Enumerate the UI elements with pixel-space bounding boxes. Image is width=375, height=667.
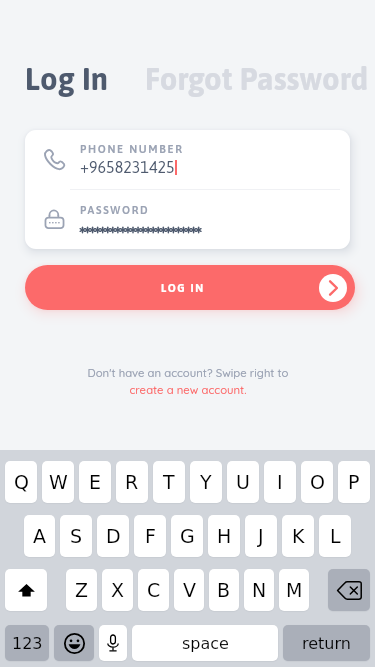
button[interactable]: 123 (5, 625, 49, 661)
staticText: I (277, 471, 283, 493)
button[interactable]: S (60, 515, 92, 557)
staticText: E (89, 471, 102, 493)
button[interactable]: space (132, 625, 278, 661)
button[interactable]: J (245, 515, 277, 557)
button[interactable]: V (174, 569, 204, 611)
staticText: LOG IN (161, 282, 205, 295)
button[interactable]: P (338, 461, 370, 503)
staticText: space (182, 634, 229, 653)
staticText: 123 (12, 634, 43, 653)
staticText: B (217, 579, 231, 601)
button[interactable]: Z (66, 569, 97, 611)
staticText: D (106, 525, 121, 547)
staticText: J (258, 525, 264, 547)
staticText: V (183, 579, 196, 601)
button[interactable]: Emoji (54, 625, 94, 661)
button[interactable]: K (282, 515, 314, 557)
button[interactable]: M (279, 569, 309, 611)
button[interactable]: N (244, 569, 274, 611)
button[interactable]: L (319, 515, 351, 557)
button[interactable]: LOG IN (25, 265, 355, 310)
staticText: K (292, 525, 305, 547)
staticText: L (330, 525, 341, 547)
button[interactable]: Backspace (328, 569, 370, 611)
button[interactable]: H (208, 515, 240, 557)
staticText: +9658231425 (80, 158, 175, 176)
button[interactable]: Log In (25, 61, 109, 97)
staticText: Don't have an account? Swipe right to (87, 366, 289, 380)
button[interactable]: X (102, 569, 133, 611)
staticText: R (125, 471, 139, 493)
staticText: M (286, 579, 303, 601)
button[interactable]: G (171, 515, 203, 557)
button[interactable]: W (42, 461, 74, 503)
staticText: H (217, 525, 232, 547)
button[interactable]: D (97, 515, 129, 557)
button[interactable]: E (79, 461, 111, 503)
staticText: O (310, 471, 325, 493)
button[interactable]: A (24, 515, 55, 557)
staticText: X (111, 579, 125, 601)
staticText: C (147, 579, 161, 601)
button[interactable]: F (134, 515, 166, 557)
staticText: PASSWORD (80, 204, 150, 217)
staticText: F (145, 525, 156, 547)
button[interactable]: T (153, 461, 185, 503)
button[interactable]: Shift (5, 569, 47, 611)
button[interactable]: return (283, 625, 370, 661)
staticText: Q (14, 471, 29, 493)
staticText: Z (75, 579, 89, 601)
button[interactable]: create a new account. (129, 383, 247, 397)
other: Submit (319, 274, 347, 302)
button[interactable]: Dictation (99, 625, 127, 661)
staticText: return (302, 634, 351, 653)
button[interactable]: Y (190, 461, 222, 503)
staticText: T (163, 471, 175, 493)
staticText: S (70, 525, 83, 547)
button[interactable]: Q (5, 461, 37, 503)
staticText: A (33, 525, 46, 547)
staticText: U (236, 471, 250, 493)
button[interactable]: B (209, 569, 239, 611)
button[interactable]: O (301, 461, 333, 503)
staticText: PHONE NUMBER (80, 143, 184, 156)
button[interactable]: I (264, 461, 296, 503)
button[interactable]: R (116, 461, 148, 503)
staticText: P (348, 471, 360, 493)
button[interactable]: U (227, 461, 259, 503)
staticText: N (252, 579, 267, 601)
button[interactable]: C (138, 569, 169, 611)
staticText: G (180, 525, 195, 547)
button[interactable]: Forgot Password (145, 61, 368, 97)
staticText: W (49, 471, 68, 493)
staticText: Y (200, 471, 212, 493)
